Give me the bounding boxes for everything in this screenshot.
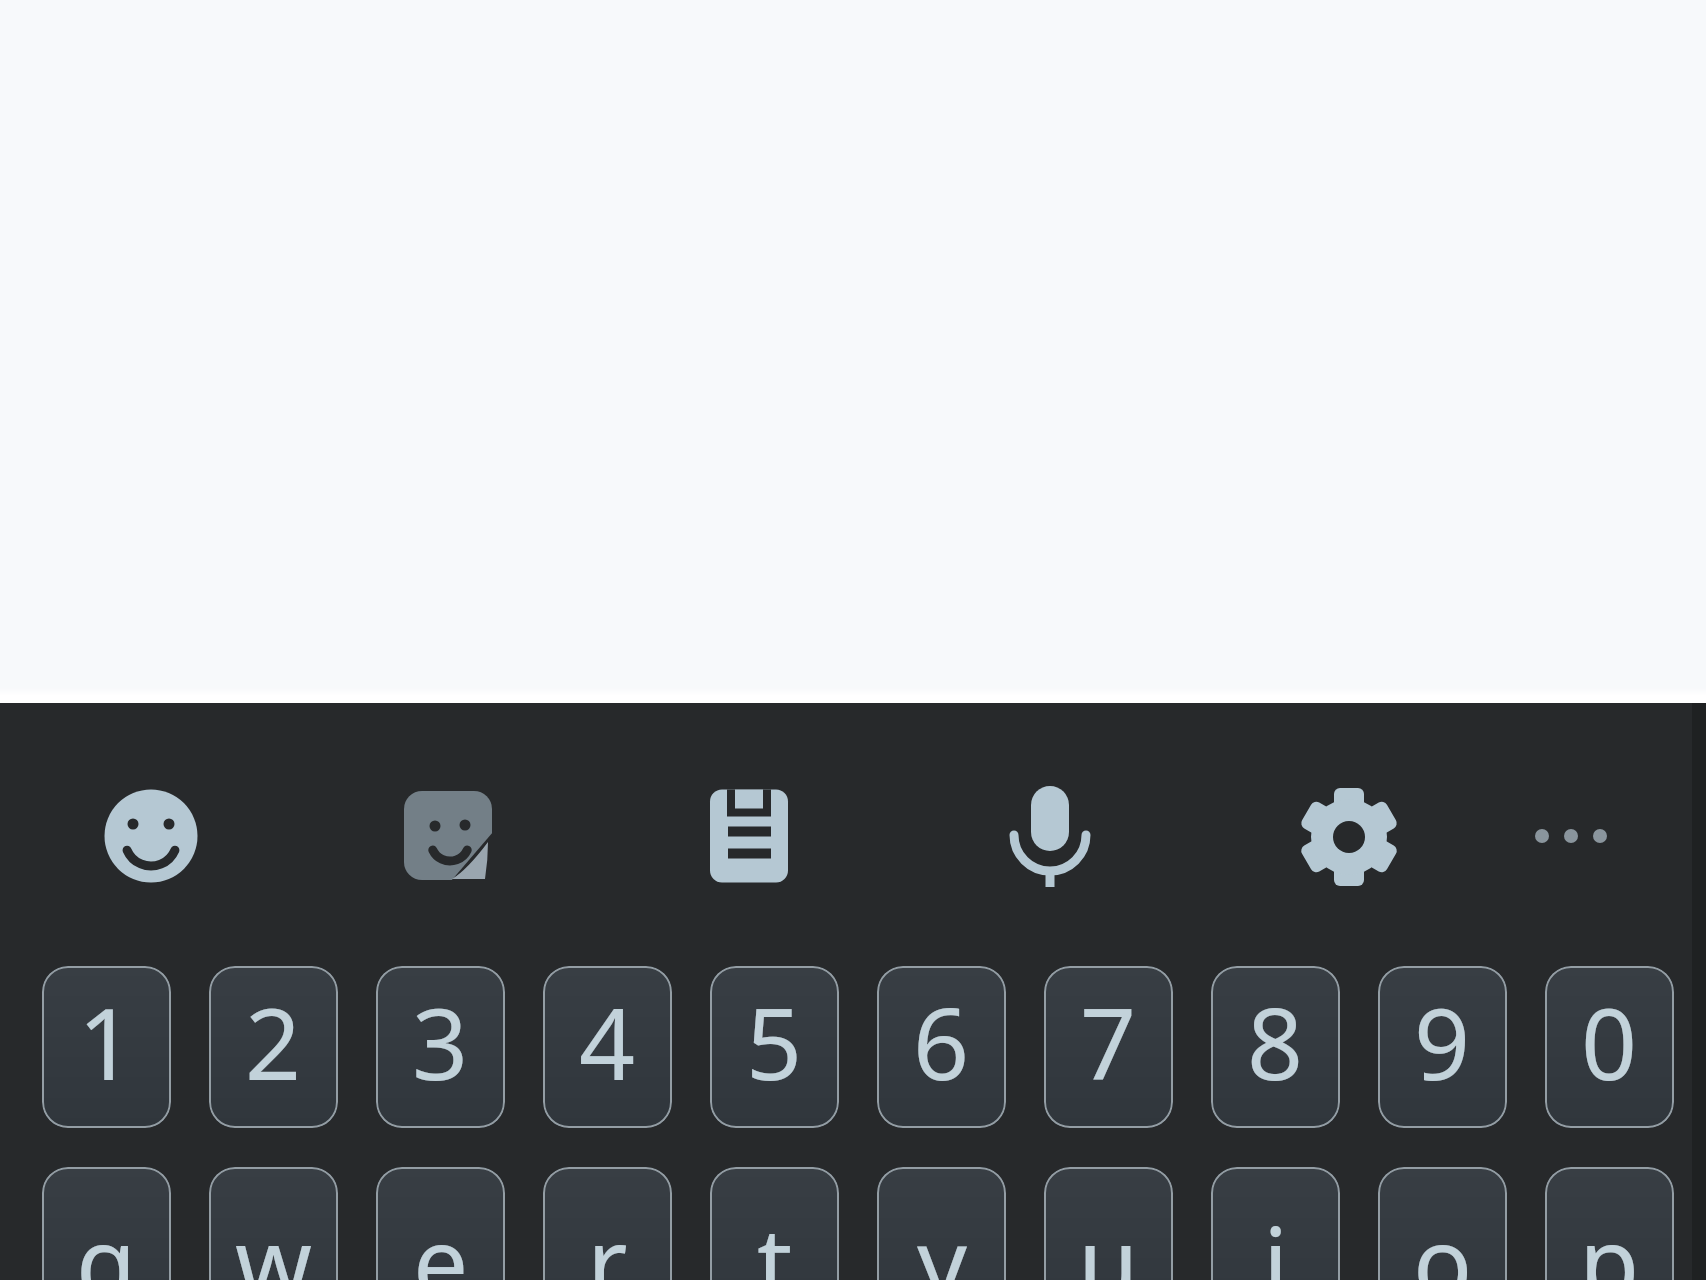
button[interactable]: 0 [1545, 966, 1674, 1128]
button[interactable] [988, 774, 1112, 898]
button[interactable]: 4 [543, 966, 672, 1128]
button[interactable] [1509, 774, 1633, 898]
staticText: w [235, 1194, 313, 1280]
staticText: 6 [913, 975, 970, 1108]
staticText: 1 [78, 975, 135, 1108]
staticText: 3 [412, 975, 469, 1108]
button[interactable]: y [877, 1167, 1006, 1280]
staticText: e [413, 1194, 469, 1280]
button[interactable]: 5 [710, 966, 839, 1128]
button[interactable]: o [1378, 1167, 1507, 1280]
button[interactable]: 6 [877, 966, 1006, 1128]
staticText: o [1413, 1194, 1473, 1280]
staticText: 2 [245, 975, 302, 1108]
staticText: 7 [1080, 975, 1137, 1108]
button[interactable] [89, 774, 213, 898]
staticText: r [587, 1194, 628, 1280]
staticText: y [917, 1194, 967, 1280]
staticText: 5 [746, 975, 803, 1108]
staticText: 9 [1414, 975, 1471, 1108]
button[interactable]: 9 [1378, 966, 1507, 1128]
button[interactable] [386, 774, 510, 898]
staticText: 4 [579, 975, 636, 1108]
staticText: p [1579, 1194, 1640, 1280]
button[interactable]: u [1044, 1167, 1173, 1280]
button[interactable]: r [543, 1167, 672, 1280]
button[interactable]: 1 [42, 966, 171, 1128]
staticText: q [76, 1194, 137, 1280]
staticText: 8 [1247, 975, 1304, 1108]
button[interactable]: 7 [1044, 966, 1173, 1128]
button[interactable]: w [209, 1167, 338, 1280]
staticText: u [1078, 1194, 1139, 1280]
button[interactable]: t [710, 1167, 839, 1280]
staticText: i [1263, 1194, 1289, 1280]
button[interactable]: 2 [209, 966, 338, 1128]
button[interactable]: p [1545, 1167, 1674, 1280]
button[interactable]: e [376, 1167, 505, 1280]
staticText: 0 [1581, 975, 1638, 1108]
button[interactable] [687, 774, 811, 898]
button[interactable]: q [42, 1167, 171, 1280]
staticText: t [757, 1194, 793, 1280]
button[interactable]: 8 [1211, 966, 1340, 1128]
button[interactable] [1287, 775, 1411, 899]
button[interactable]: 3 [376, 966, 505, 1128]
button[interactable]: i [1211, 1167, 1340, 1280]
